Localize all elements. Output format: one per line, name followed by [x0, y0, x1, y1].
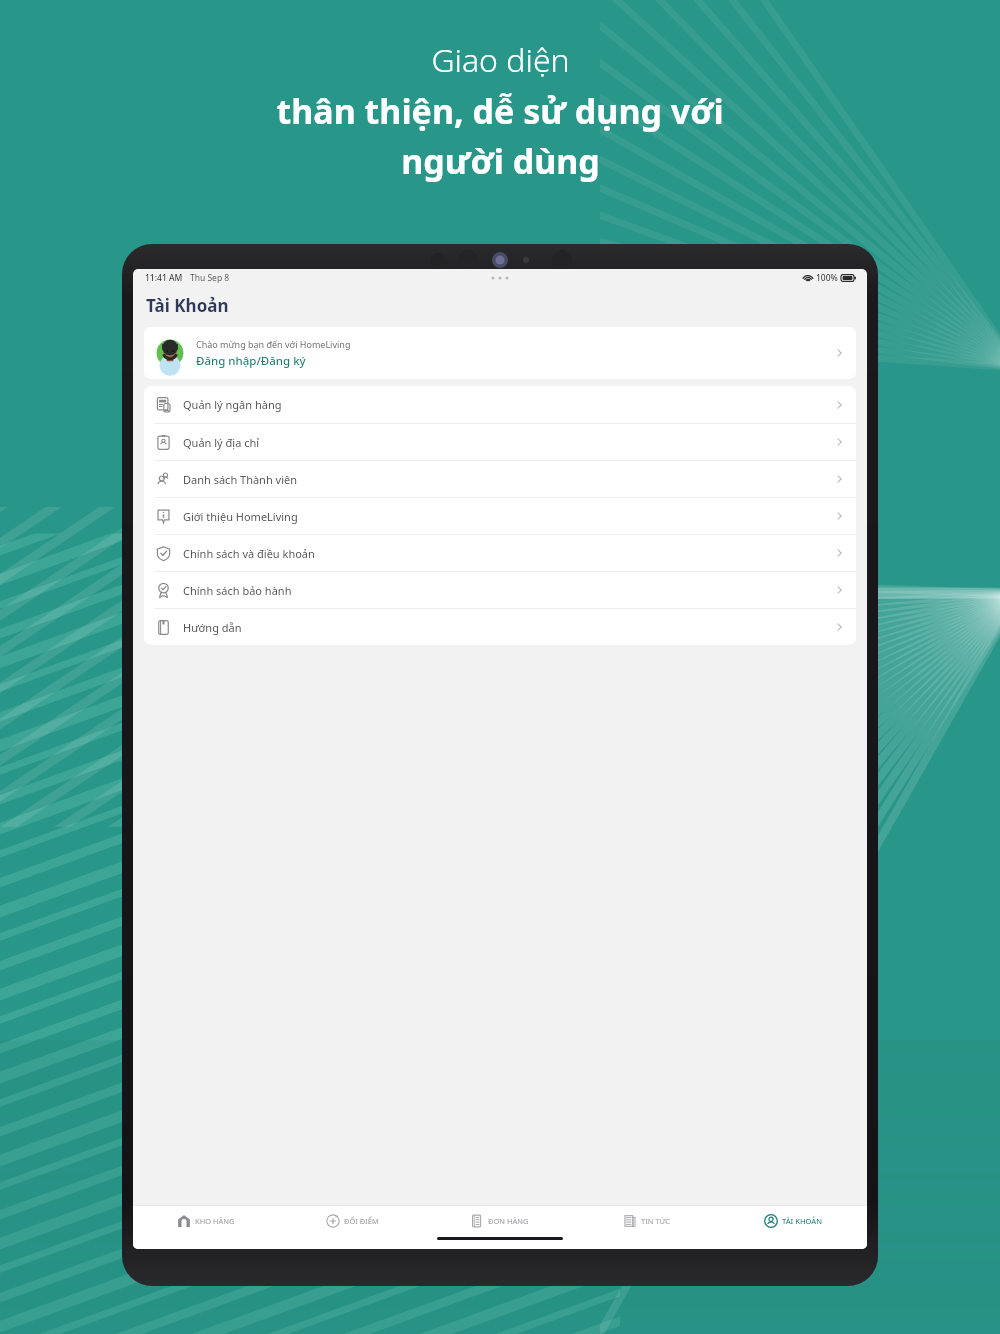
button[interactable]: Giới thiệu HomeLiving	[144, 498, 856, 534]
button[interactable]: Quản lý ngân hàng	[144, 386, 856, 423]
button[interactable]: Danh sách Thành viên	[144, 461, 856, 497]
staticText: Giới thiệu HomeLiving	[183, 509, 833, 524]
staticText: ĐƠN HÀNG	[488, 1216, 529, 1226]
staticText: người dùng	[401, 138, 600, 184]
staticText: Đăng nhập/Đăng ký	[196, 353, 306, 369]
staticText: Thu Sep 8	[190, 272, 230, 284]
staticText: Hướng dẫn	[183, 620, 833, 635]
other: Mở	[833, 621, 845, 633]
staticText: Danh sách Thành viên	[183, 472, 833, 487]
other: Mở	[833, 547, 845, 559]
staticText: ĐỔI ĐIỂM	[344, 1216, 379, 1226]
button[interactable]: Chính sách bảo hành	[144, 572, 856, 608]
staticText: KHO HÀNG	[195, 1216, 235, 1226]
button[interactable]: ĐƠN HÀNG	[426, 1206, 573, 1236]
other: Mở	[833, 347, 845, 359]
other: Mở	[833, 436, 845, 448]
button[interactable]: TÀI KHOẢN	[720, 1206, 867, 1236]
other: Mở	[833, 510, 845, 522]
button[interactable]: Hướng dẫn	[144, 609, 856, 645]
staticText: thân thiện, dễ sử dụng với	[276, 88, 724, 134]
other: Mở	[833, 399, 845, 411]
staticText: Chính sách bảo hành	[183, 583, 833, 598]
button[interactable]: Chính sách và điều khoản	[144, 535, 856, 571]
staticText: TÀI KHOẢN	[782, 1216, 823, 1226]
staticText: Chính sách và điều khoản	[183, 546, 833, 561]
button[interactable]: Chào mừng bạn đến với HomeLiving	[144, 327, 856, 379]
button[interactable]: TIN TỨC	[573, 1206, 720, 1236]
other: Mở	[833, 473, 845, 485]
staticText: TIN TỨC	[641, 1216, 671, 1226]
staticText: Giao diện	[431, 38, 570, 82]
button[interactable]: Quản lý địa chỉ	[144, 424, 856, 460]
other: Mở	[833, 584, 845, 596]
button[interactable]: ĐỔI ĐIỂM	[279, 1206, 426, 1236]
staticText: Quản lý ngân hàng	[183, 397, 833, 412]
button[interactable]: KHO HÀNG	[133, 1206, 279, 1236]
staticText: 100%	[816, 272, 838, 284]
staticText: Quản lý địa chỉ	[183, 435, 833, 450]
staticText: 11:41 AM	[145, 272, 183, 284]
staticText: Tài Khoản	[146, 294, 229, 317]
staticText: Chào mừng bạn đến với HomeLiving	[196, 338, 351, 350]
